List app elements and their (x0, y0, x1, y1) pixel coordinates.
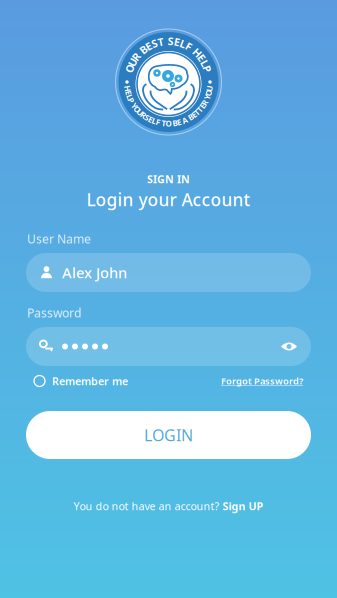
staticText: Remember me (52, 374, 128, 388)
staticText: Y (205, 92, 210, 102)
staticText: E (146, 39, 152, 53)
staticText: O (205, 88, 211, 98)
button[interactable]: LOGIN (26, 411, 311, 459)
staticText: T (158, 35, 164, 49)
staticText: R (141, 110, 146, 120)
staticText: L (128, 91, 132, 102)
staticText: SIGN IN (147, 172, 190, 186)
button[interactable]: Forgot Password? (221, 375, 303, 387)
staticText: LOGIN (144, 424, 193, 446)
staticText: T (162, 118, 167, 129)
staticText: E (200, 101, 204, 111)
staticText: S (168, 34, 174, 48)
staticText (205, 95, 207, 105)
staticText: L (152, 116, 156, 126)
staticText: P (129, 95, 134, 106)
staticText: B (188, 112, 193, 122)
staticText: T (194, 107, 199, 117)
staticText: User Name (27, 231, 91, 247)
staticText: Alex John (62, 263, 127, 282)
staticText (171, 118, 173, 129)
staticText: R (202, 97, 207, 108)
staticText: F (186, 39, 192, 53)
staticText: T (197, 104, 202, 115)
staticText: E (148, 114, 152, 125)
staticText: R (133, 50, 140, 64)
staticText: You do not have an account? (73, 499, 222, 513)
staticText: Login your Account (86, 188, 250, 211)
staticText: E (192, 109, 196, 120)
staticText (160, 117, 162, 128)
staticText: O (126, 62, 134, 76)
staticText: S (151, 36, 157, 51)
staticText: Password (27, 305, 81, 321)
staticText: P (204, 62, 211, 76)
staticText: O (134, 104, 140, 114)
button[interactable]: Remember me (34, 374, 128, 388)
staticText: Forgot Password? (221, 375, 303, 387)
staticText: E (177, 117, 181, 127)
staticText: B (140, 42, 147, 57)
staticText: H (124, 83, 130, 94)
staticText: L (180, 37, 186, 51)
staticText (181, 116, 183, 126)
staticText: A (182, 115, 188, 125)
staticText: U (129, 55, 137, 69)
staticText: H (193, 46, 201, 60)
staticText: U (137, 107, 143, 118)
staticText: E (126, 87, 130, 98)
staticText (192, 42, 195, 56)
staticText: F (156, 117, 160, 127)
staticText: L (202, 56, 208, 70)
staticText: B (172, 118, 177, 128)
staticText: E (174, 35, 180, 49)
button[interactable]: Show password (281, 340, 297, 352)
staticText: O (165, 118, 171, 129)
staticText: Sign UP (222, 499, 263, 513)
staticText (187, 113, 189, 124)
staticText: U (206, 83, 212, 94)
staticText: E (198, 51, 204, 65)
staticText: Y (132, 100, 137, 111)
staticText (132, 98, 134, 108)
button[interactable]: Sign UP (222, 499, 263, 513)
staticText (138, 46, 141, 60)
staticText: S (145, 112, 149, 123)
